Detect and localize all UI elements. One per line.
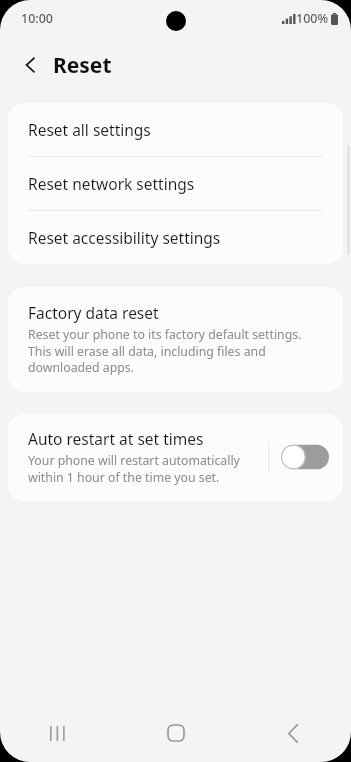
button[interactable]: Back [234,704,351,762]
staticText: Reset all settings [28,119,151,140]
staticText: 10:00 [21,10,54,27]
staticText: Auto restart at set times [28,428,204,449]
staticText: Reset [53,51,112,80]
staticText: Reset accessibility settings [28,227,221,248]
button[interactable]: Reset accessibility settings [8,211,343,264]
button[interactable]: Home [117,704,234,762]
button[interactable]: Reset network settings [8,157,343,210]
staticText: Factory data reset [28,302,159,323]
button[interactable]: Reset all settings [8,103,343,156]
staticText: Your phone will restart automatically wi… [28,452,258,486]
button[interactable]: Back [10,44,52,86]
button[interactable]: Auto restart at set times [8,414,343,501]
staticText: Reset your phone to its factory default … [28,326,323,376]
button[interactable]: Recents [0,704,117,762]
button[interactable]: Factory data reset [8,287,343,392]
staticText: 100% [296,10,329,27]
button[interactable]: Auto restart at set times toggle [281,442,329,472]
staticText: Reset network settings [28,173,195,194]
